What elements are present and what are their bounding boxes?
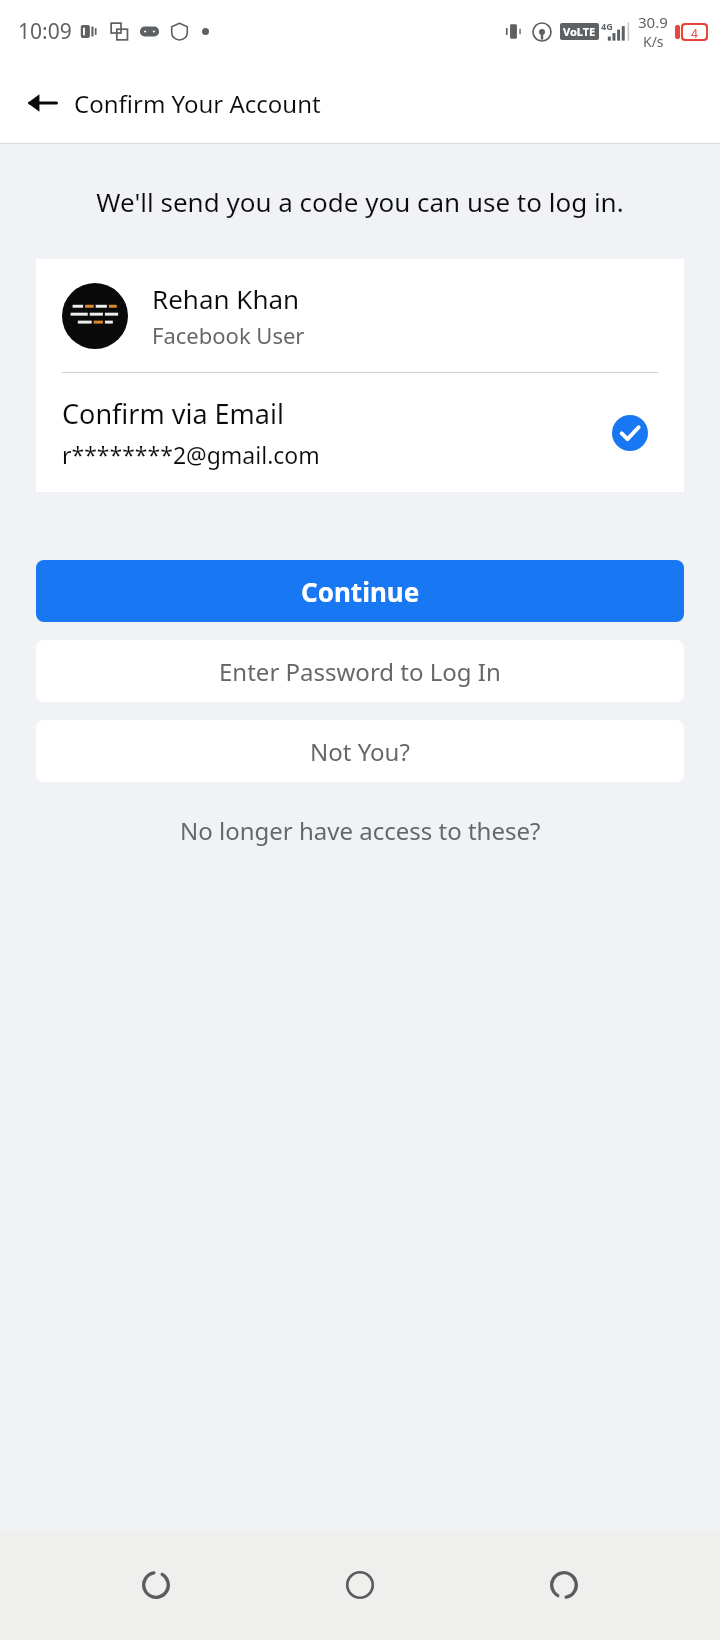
button[interactable]: No longer have access to these? [0,804,720,857]
staticText: Confirm via Email [62,395,284,432]
staticText: 10:09 [18,17,72,46]
staticText: 4G [601,20,613,32]
staticText: Rehan Khan [152,281,300,316]
staticText: K/s [643,32,664,51]
button[interactable]: Not You? [36,720,684,782]
button[interactable]: Continue [36,560,684,622]
staticText: VoLTE [563,24,596,39]
staticText: Enter Password to Log In [219,655,501,688]
staticText: Confirm Your Account [74,87,321,120]
button[interactable]: Home [312,1537,408,1633]
staticText: We'll send you a code you can use to log… [68,184,652,219]
button[interactable]: Back [10,71,74,135]
staticText: Not You? [310,735,410,768]
button[interactable]: Recents [108,1537,204,1633]
button[interactable]: Enter Password to Log In [36,640,684,702]
staticText: Facebook User [152,320,305,350]
staticText: 30.9 [638,12,668,32]
staticText: 4 [691,25,698,39]
staticText: r********2@gmail.com [62,439,320,470]
staticText: Continue [301,574,420,609]
button[interactable]: Back [516,1537,612,1633]
button[interactable]: Confirm via Email [36,373,684,492]
staticText: No longer have access to these? [180,814,541,847]
